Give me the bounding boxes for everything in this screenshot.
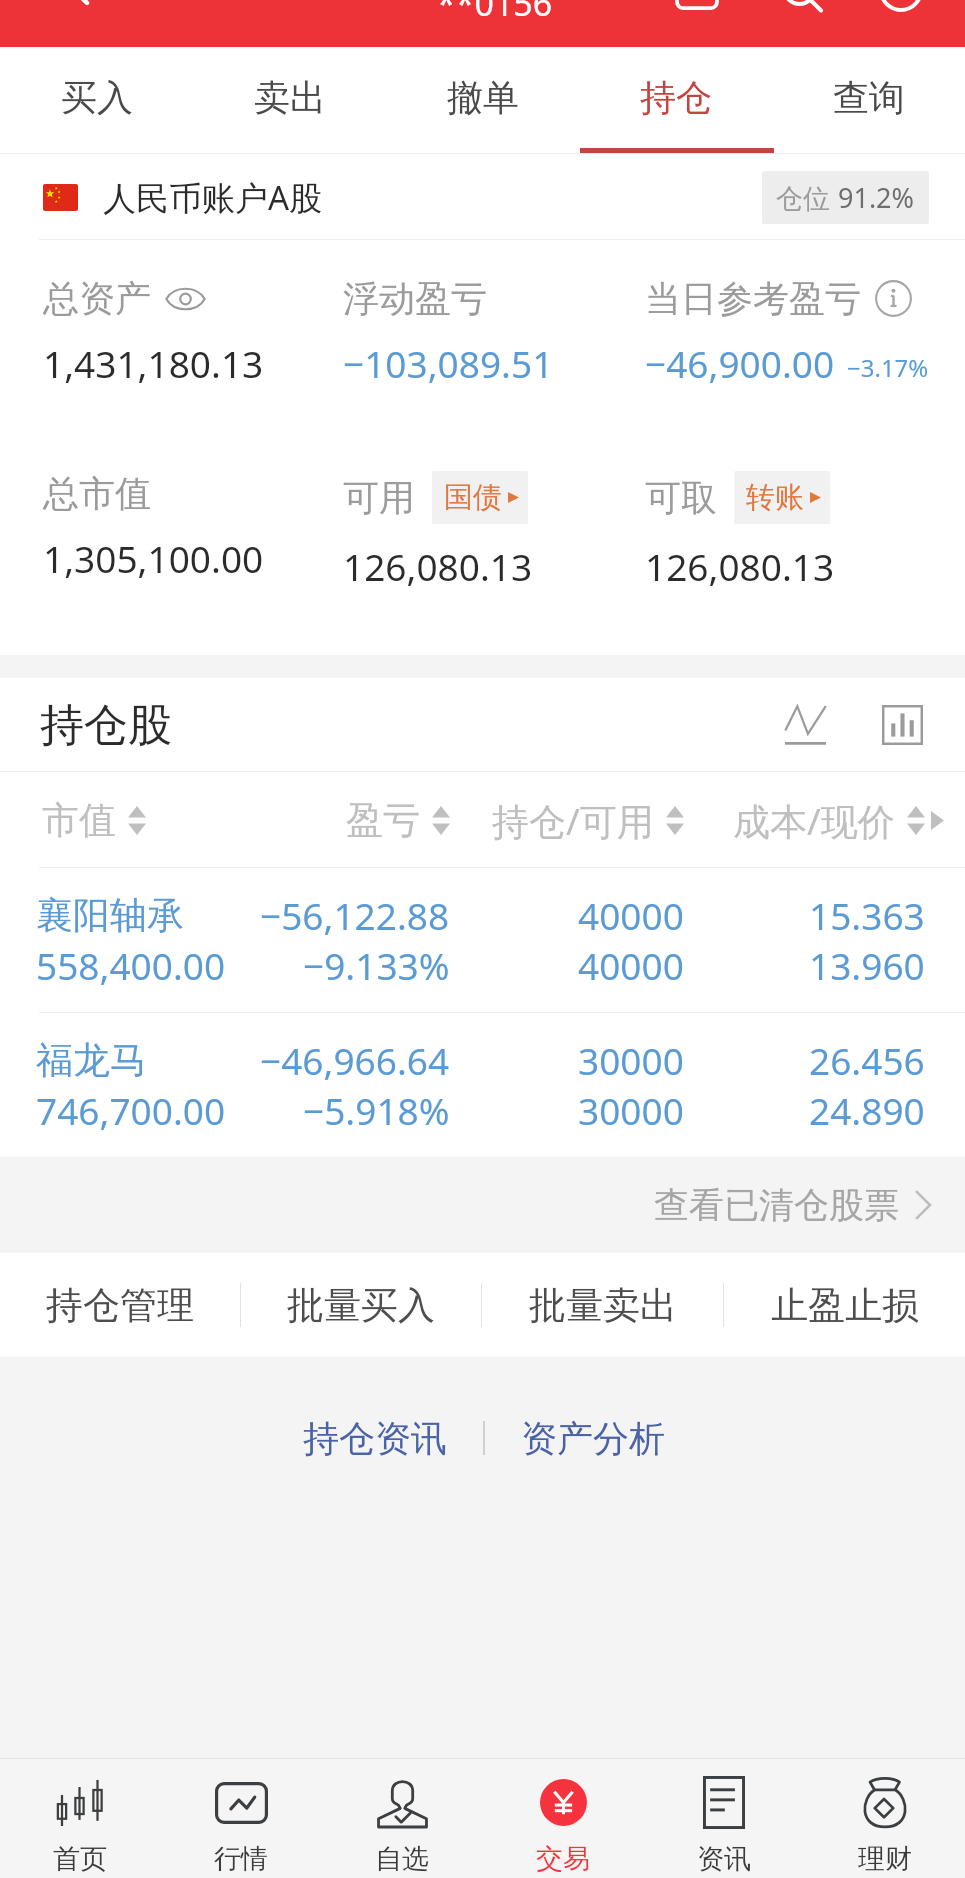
staticText: −46,966.64	[260, 1035, 450, 1085]
staticText: 撤单	[447, 75, 519, 120]
button[interactable]: Back	[58, 0, 102, 10]
staticText: 40000	[578, 890, 684, 940]
button[interactable]: 止盈止损	[724, 1253, 965, 1357]
staticText: 查询	[833, 75, 905, 120]
button[interactable]: Account	[876, 0, 926, 15]
staticText: 福龙马	[36, 1037, 147, 1084]
staticText: 可用	[343, 475, 415, 520]
staticText: 持仓	[640, 75, 712, 120]
staticText: 襄阳轴承	[36, 892, 184, 939]
staticText: 交易	[536, 1842, 590, 1876]
staticText: 746,700.00	[36, 1085, 226, 1135]
button[interactable]: Bar chart	[871, 694, 933, 756]
staticText: −46,900.00	[645, 338, 835, 388]
button[interactable]: 国债	[432, 471, 528, 524]
staticText: 人民币账户A股	[103, 175, 323, 220]
staticText: 24.890	[809, 1085, 925, 1135]
staticText: **0156	[437, 0, 553, 26]
button[interactable]: 持仓/可用	[492, 795, 684, 846]
staticText: 持仓股	[40, 698, 172, 753]
button[interactable]: 资产分析	[485, 1404, 689, 1473]
staticText: 40000	[578, 940, 684, 990]
staticText: 15.363	[809, 890, 925, 940]
button[interactable]: 成本/现价	[733, 795, 925, 846]
staticText: 浮动盈亏	[343, 276, 487, 321]
staticText: 1,431,180.13	[43, 338, 264, 388]
button[interactable]: 卖出	[193, 47, 386, 154]
button[interactable]: 撤单	[386, 47, 579, 154]
staticText: 国债	[444, 479, 502, 516]
button[interactable]: 自选	[321, 1766, 482, 1878]
staticText: 买入	[61, 75, 133, 120]
button[interactable]: 盈亏	[346, 797, 450, 844]
staticText: 持仓资讯	[303, 1416, 447, 1461]
staticText: −56,122.88	[260, 890, 450, 940]
staticText: −5.918%	[303, 1085, 450, 1135]
staticText: 总市值	[43, 471, 151, 516]
button[interactable]: 批量卖出	[482, 1253, 723, 1357]
staticText: 30000	[578, 1085, 684, 1135]
button[interactable]: 理财	[804, 1766, 965, 1878]
staticText: 卖出	[254, 75, 326, 120]
button[interactable]: 查看已清仓股票	[0, 1157, 965, 1253]
staticText: 仓位	[776, 179, 838, 216]
staticText: 理财	[858, 1842, 912, 1876]
button[interactable]: 持仓	[579, 47, 772, 154]
button[interactable]: 市值	[42, 797, 146, 844]
button[interactable]: 持仓资讯	[279, 1404, 483, 1473]
button[interactable]: 持仓管理	[0, 1253, 240, 1357]
staticText: 盈亏	[346, 797, 420, 844]
staticText: 批量卖出	[529, 1282, 677, 1329]
staticText: 126,080.13	[343, 541, 533, 591]
staticText: −103,089.51	[343, 338, 554, 388]
button[interactable]: Trend chart	[774, 694, 836, 756]
button[interactable]: Messages	[672, 0, 722, 15]
staticText: 止盈止损	[771, 1282, 919, 1329]
button[interactable]: 查询	[772, 47, 965, 154]
staticText: 资产分析	[521, 1416, 665, 1461]
staticText: 30000	[578, 1035, 684, 1085]
staticText: −9.133%	[303, 940, 450, 990]
other: Information	[875, 280, 912, 317]
staticText: 自选	[375, 1842, 429, 1876]
staticText: 1,305,100.00	[43, 533, 264, 583]
staticText: 转账	[746, 479, 804, 516]
staticText: −3.17%	[847, 351, 929, 384]
staticText: 91.2%	[838, 179, 915, 216]
staticText: 首页	[53, 1842, 107, 1876]
staticText: 26.456	[809, 1035, 925, 1085]
other: Toggle balance visibility	[165, 288, 206, 310]
button[interactable]: 资讯	[643, 1766, 804, 1878]
staticText: 持仓/可用	[492, 795, 654, 846]
staticText: 市值	[42, 797, 116, 844]
staticText: 总资产	[43, 276, 151, 321]
button[interactable]: 转账	[734, 471, 830, 524]
staticText: 资讯	[697, 1842, 751, 1876]
button[interactable]: 买入	[0, 47, 193, 154]
staticText: 持仓管理	[46, 1282, 194, 1329]
staticText: 成本/现价	[733, 795, 895, 846]
staticText: 查看已清仓股票	[654, 1183, 899, 1227]
button[interactable]: 交易	[482, 1766, 643, 1878]
button[interactable]: 首页	[0, 1766, 160, 1878]
staticText: 行情	[214, 1842, 268, 1876]
button[interactable]: Search	[778, 0, 828, 15]
button[interactable]: 襄阳轴承	[0, 868, 965, 1012]
staticText: 126,080.13	[645, 541, 835, 591]
button[interactable]: 行情	[160, 1766, 321, 1878]
staticText: 558,400.00	[36, 940, 226, 990]
button[interactable]: 批量买入	[241, 1253, 481, 1357]
staticText: 可取	[645, 475, 717, 520]
button[interactable]: 仓位	[762, 171, 929, 224]
staticText: 批量买入	[287, 1282, 435, 1329]
staticText: 13.960	[809, 940, 925, 990]
button[interactable]: 福龙马	[0, 1013, 965, 1157]
staticText: 当日参考盈亏	[645, 276, 861, 321]
